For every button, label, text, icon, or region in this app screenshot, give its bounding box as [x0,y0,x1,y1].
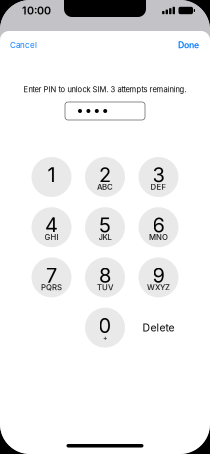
button[interactable]: Done [178,31,210,59]
button[interactable]: 8 [85,257,125,297]
button[interactable]: 9 [138,257,178,297]
staticText: 5 [99,213,111,237]
staticText: 8 [99,263,111,287]
staticText: WXYZ [147,283,170,292]
staticText: Enter PIN to unlock SIM. 3 attempts rema… [23,85,186,94]
staticText: 4 [45,213,58,237]
staticText: 0 [98,313,111,338]
staticText: GHI [44,232,58,242]
staticText: + [103,334,107,342]
staticText: JKL [98,232,111,242]
button[interactable]: 2 [85,157,125,197]
button[interactable]: Cancel [0,31,37,59]
staticText: 3 [152,163,164,187]
staticText: 9 [152,263,164,287]
button[interactable]: 6 [138,207,178,247]
staticText: TUV [97,283,113,292]
button[interactable]: 3 [138,157,178,197]
staticText: Done [178,40,199,50]
button[interactable]: 0 [85,308,125,348]
staticText: Cancel [10,40,37,50]
staticText: MNO [149,232,168,242]
button[interactable]: 7 [31,257,71,297]
staticText: 10:00 [22,4,51,17]
button[interactable]: 1 [31,157,71,197]
staticText: PQRS [41,283,62,292]
staticText: 1 [47,163,55,187]
staticText: 6 [152,213,164,237]
staticText: ABC [97,182,113,192]
staticText: 7 [46,263,57,287]
button[interactable]: 4 [31,207,71,247]
staticText: Delete [142,321,174,334]
button[interactable]: Delete [133,308,183,348]
staticText: DEF [150,182,166,192]
staticText: 2 [99,163,111,187]
button[interactable]: 5 [85,207,125,247]
